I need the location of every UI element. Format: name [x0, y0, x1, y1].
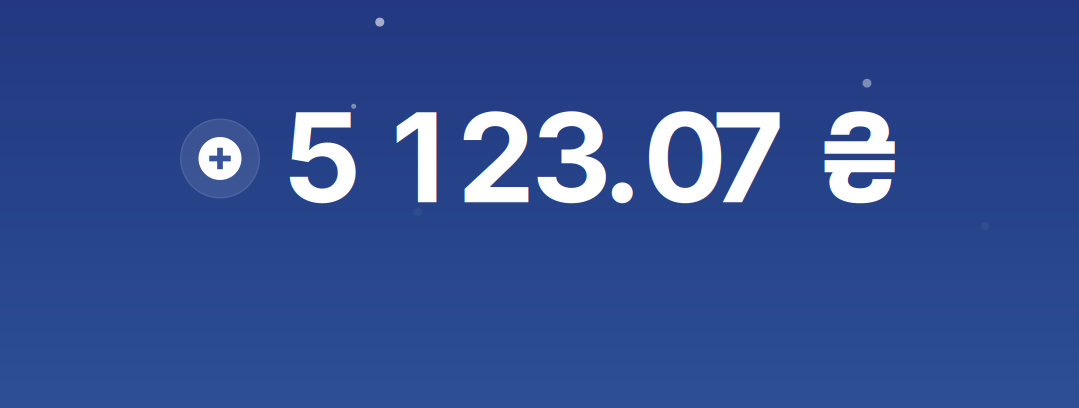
staticText: 0 [643, 82, 727, 232]
staticText: ₴ [814, 82, 906, 232]
staticText: 1 [391, 82, 444, 232]
staticText: . [602, 82, 643, 232]
staticText: 5 [282, 82, 361, 232]
staticText: 3 [531, 82, 611, 232]
staticText: 2 [457, 82, 535, 232]
staticText: 7 [712, 82, 784, 232]
button[interactable]: Add money [180, 118, 260, 198]
